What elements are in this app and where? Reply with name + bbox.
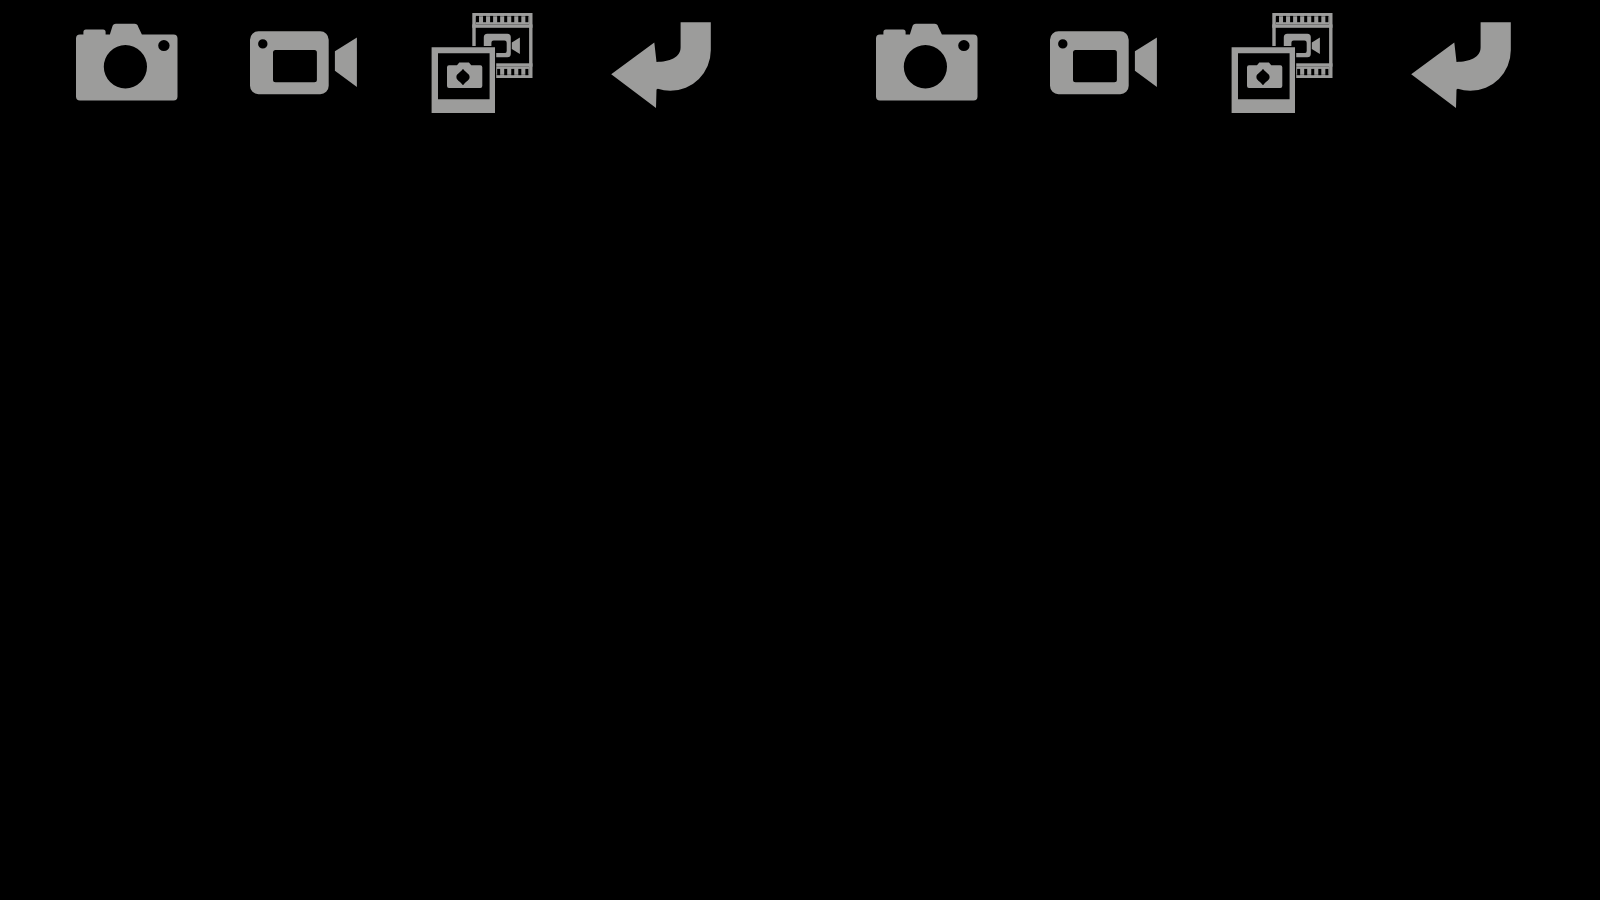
- button[interactable]: Take photo: [50, 0, 210, 140]
- button[interactable]: Record video: [225, 0, 385, 140]
- button[interactable]: Gallery: [1210, 0, 1370, 140]
- button[interactable]: Record video: [1025, 0, 1185, 140]
- button[interactable]: Take photo: [850, 0, 1010, 140]
- button[interactable]: Back: [1395, 0, 1555, 140]
- button[interactable]: Back: [595, 0, 755, 140]
- button[interactable]: Gallery: [410, 0, 570, 140]
